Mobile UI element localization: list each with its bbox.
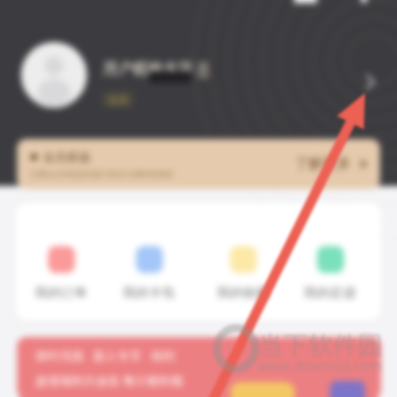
staticText: 我的订单	[35, 284, 87, 300]
staticText: 超值福利大放送 每日签到领	[36, 372, 184, 388]
button[interactable]: More	[355, 68, 383, 96]
button[interactable]: 我的订单	[31, 246, 91, 300]
staticText: 当下软件园	[258, 330, 383, 361]
staticText: 开通会员享超值优惠与更多专属特权服务	[30, 169, 174, 179]
staticText: 我的足迹	[304, 284, 356, 300]
button[interactable]: 我的足迹	[300, 246, 360, 300]
button[interactable]: 我的收藏	[213, 246, 273, 300]
staticText: www.downxia.com	[258, 356, 382, 375]
button[interactable]: 会员权益	[17, 139, 380, 189]
staticText: 会员权益	[43, 149, 91, 164]
button[interactable]: 我的卡包	[119, 246, 179, 300]
staticText: 了解更多	[295, 155, 351, 173]
staticText: 我的卡包	[123, 284, 175, 300]
staticText: 会员	[109, 94, 127, 105]
button[interactable]	[230, 382, 295, 397]
staticText: 限时优惠 新人专享 福利	[36, 347, 175, 363]
button[interactable]: 限时优惠 新人专享 福利	[17, 337, 381, 397]
staticText: 我的收藏	[217, 284, 269, 300]
staticText: 用户昵称名字	[103, 60, 193, 79]
staticText: 8	[197, 54, 210, 84]
